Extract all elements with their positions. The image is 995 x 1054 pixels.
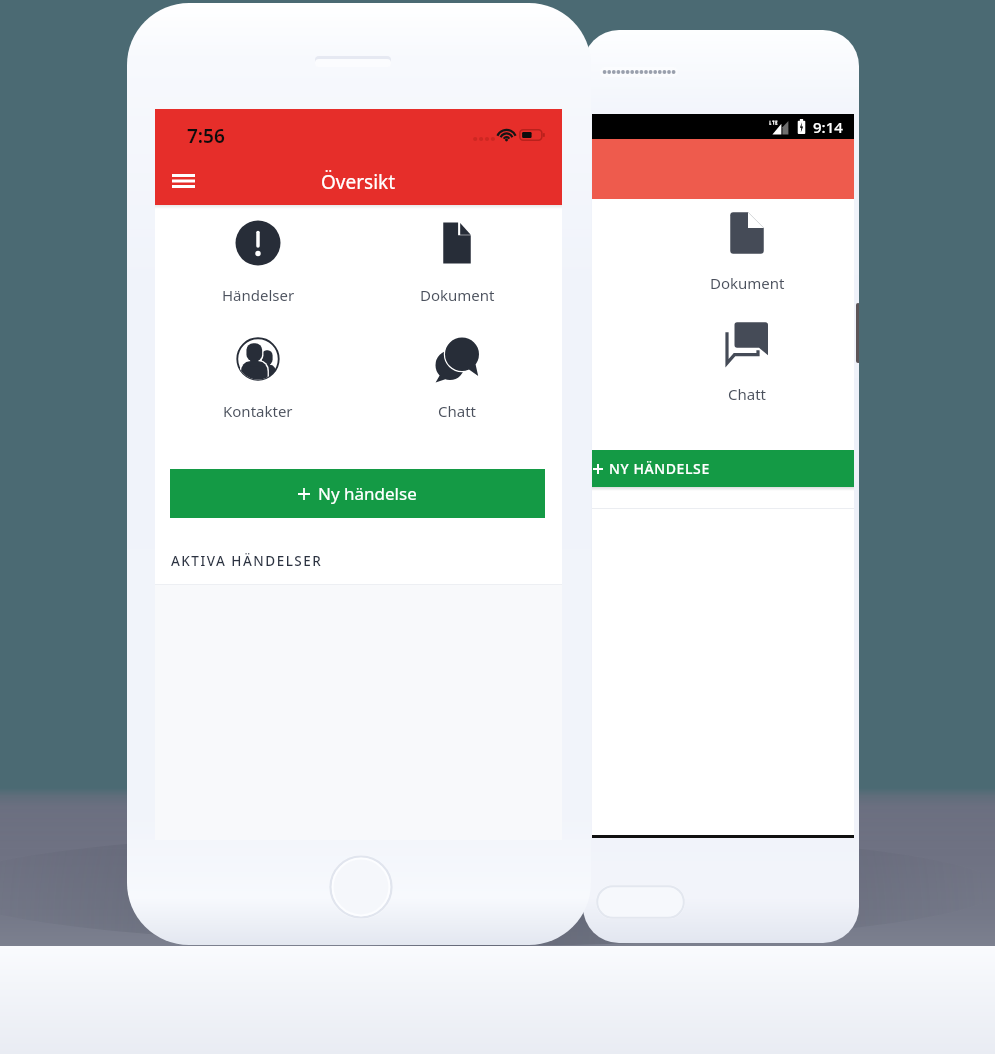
staticText: Ny händelse (318, 482, 417, 505)
staticText: Översikt (321, 169, 396, 195)
staticText: Dokument (710, 273, 785, 293)
button[interactable]: Ny händelse (170, 469, 545, 518)
staticText: Kontakter (223, 401, 293, 421)
button[interactable]: Dokument (409, 219, 505, 305)
button[interactable]: Kontakter (210, 335, 306, 421)
staticText: Chatt (438, 401, 476, 421)
staticText: Chatt (728, 384, 766, 404)
button[interactable]: Chatt (409, 335, 505, 421)
button[interactable]: NY HÄNDELSE (592, 450, 854, 487)
staticText: NY HÄNDELSE (609, 459, 710, 478)
other: Home (329, 855, 393, 919)
staticText: Händelser (222, 285, 295, 305)
staticText: Dokument (420, 285, 495, 305)
button[interactable]: Open navigation menu (161, 163, 205, 199)
button[interactable]: Dokument (701, 209, 793, 293)
staticText: AKTIVA HÄNDELSER (171, 552, 323, 570)
button[interactable]: Chatt (701, 319, 793, 404)
other: Home (596, 885, 685, 919)
button[interactable]: Händelser (210, 219, 306, 305)
staticText: 9:14 (813, 117, 843, 137)
other: Power (856, 303, 859, 363)
staticText: 7:56 (187, 123, 225, 149)
